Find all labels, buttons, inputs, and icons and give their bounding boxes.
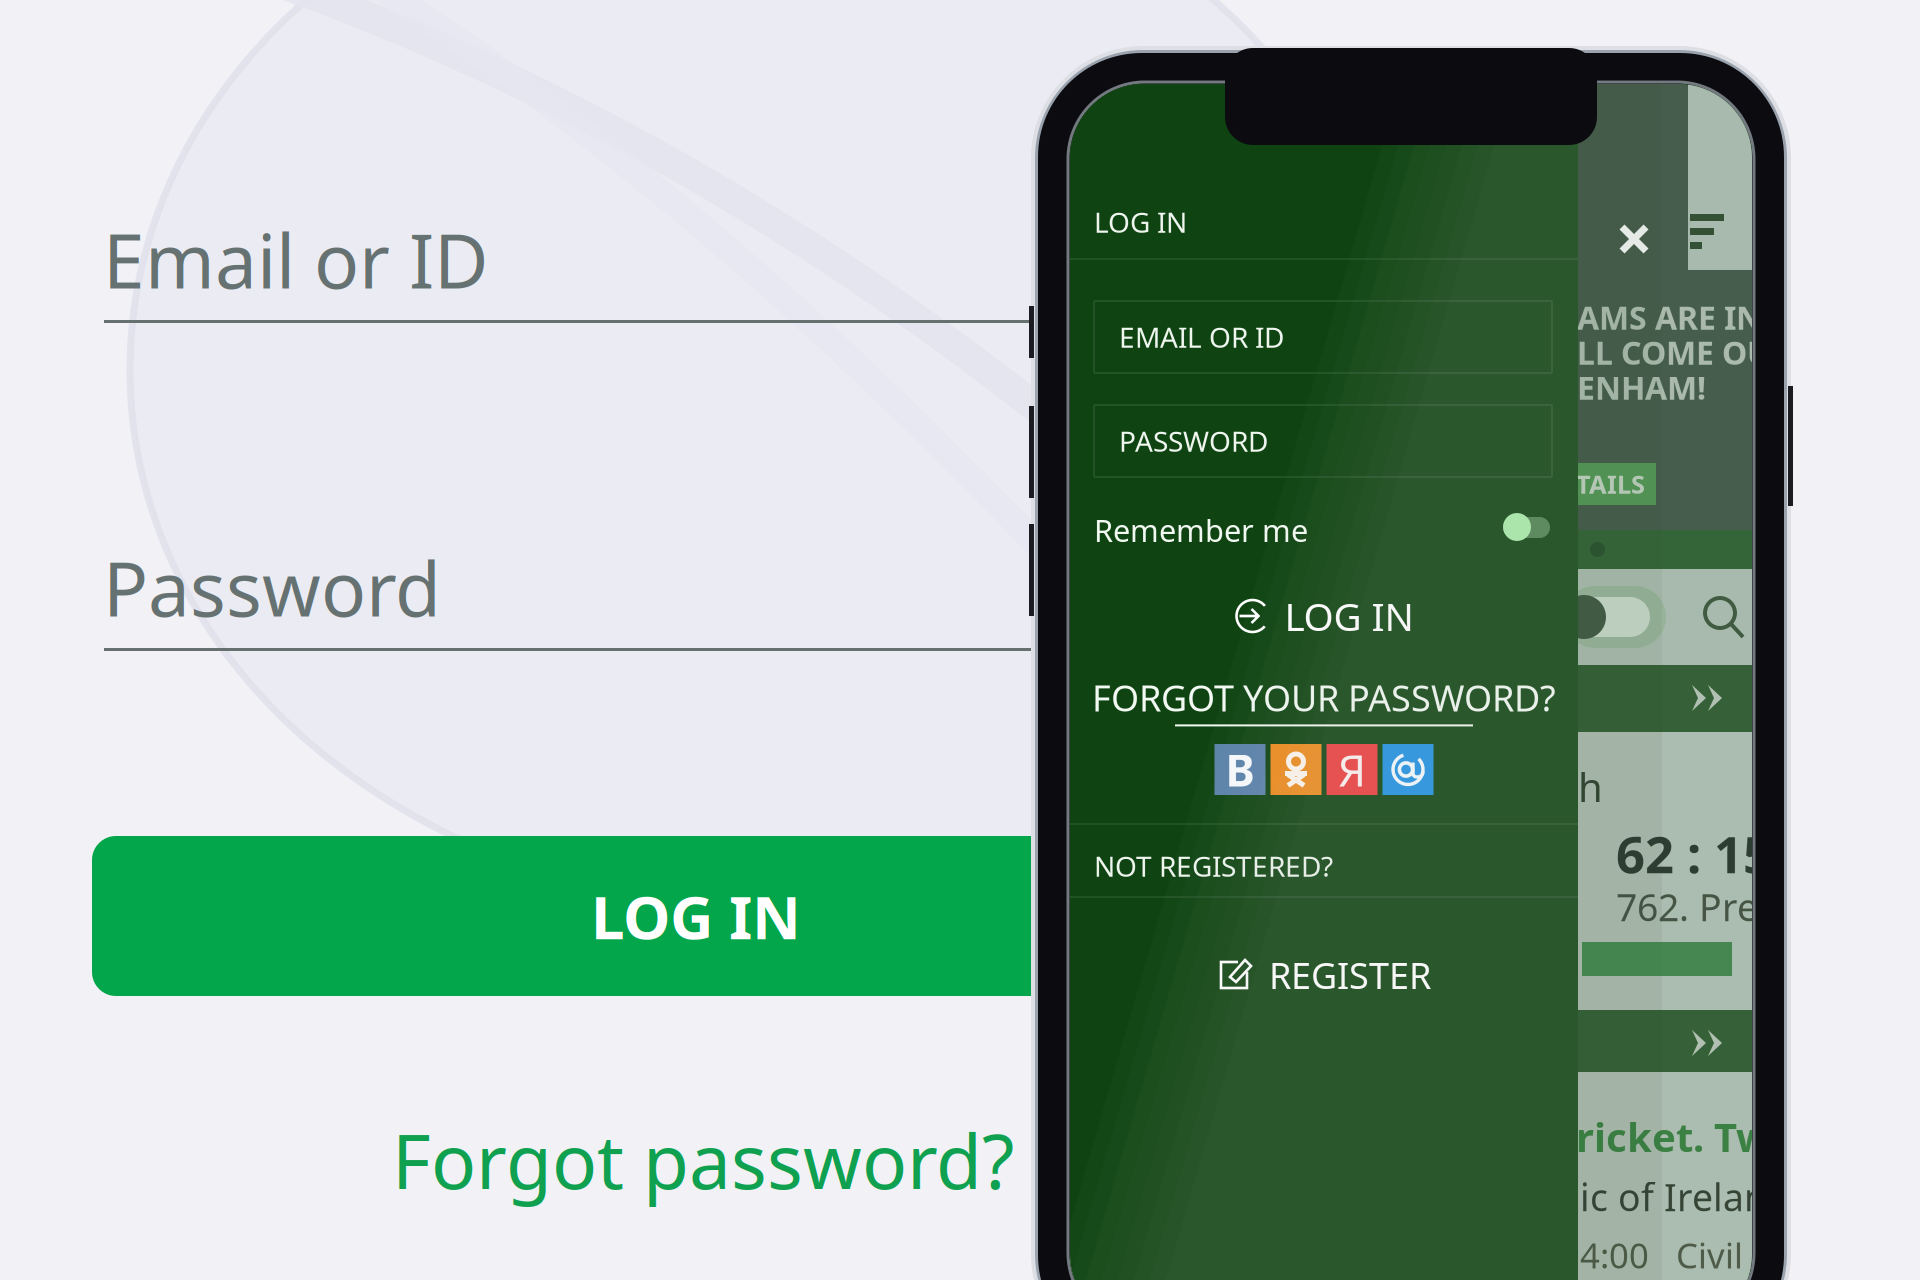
button[interactable]: Remember me (1070, 497, 1578, 563)
button[interactable]: PASSWORD (1094, 405, 1552, 477)
button[interactable]: EMAIL OR ID (1094, 301, 1552, 373)
staticText: Forgot password? (392, 1110, 1014, 1210)
staticText: FORGOT YOUR PASSWORD? (1092, 674, 1556, 721)
button[interactable]: TAILS (1570, 463, 1656, 505)
staticText: PASSWORD (1119, 422, 1268, 460)
staticText: 4:00 Civil Service (1580, 1232, 1869, 1278)
staticText: 62 : 155 (1616, 820, 1801, 887)
staticText: TAILS (1576, 467, 1645, 501)
staticText: REGISTER (1269, 951, 1431, 999)
button[interactable]: REGISTER (1070, 945, 1578, 1005)
staticText: AMS ARE IN G (1577, 296, 1793, 338)
button[interactable]: LOG IN (92, 836, 1092, 996)
button[interactable]: Close (1605, 210, 1663, 268)
staticText: EMAIL OR ID (1119, 318, 1284, 356)
staticText: lic of Ireland - (1570, 1172, 1822, 1222)
button[interactable]: Sign in with Mail.ru (1382, 744, 1433, 795)
staticText: Я (1338, 740, 1366, 799)
button[interactable]: Sign in with Yandex (1326, 744, 1377, 795)
staticText: Email or ID (103, 210, 489, 309)
staticText: h (1578, 760, 1603, 813)
staticText: LOG IN (1094, 203, 1187, 241)
staticText: LOG IN (591, 876, 801, 956)
staticText: B (1225, 740, 1254, 799)
staticText: LL COME OUT (1577, 331, 1789, 373)
staticText: 762. Pressu (1616, 882, 1817, 932)
staticText: LOG IN (1284, 590, 1413, 642)
staticText: Password (103, 538, 441, 637)
button[interactable]: LOG IN (1070, 586, 1578, 646)
button[interactable]: Sign in with VK (1214, 744, 1265, 795)
button[interactable]: Sign in with Odnoklassniki (1270, 744, 1321, 795)
button[interactable]: Forgot password? (392, 1110, 1014, 1210)
staticText: ricket. Twenty (1576, 1110, 1860, 1163)
staticText: ENHAM! (1577, 366, 1706, 408)
button[interactable]: FORGOT YOUR PASSWORD? (1070, 676, 1578, 724)
staticText: Remember me (1094, 510, 1308, 550)
staticText: NOT REGISTERED? (1094, 847, 1333, 885)
button[interactable]: Filters (1688, 82, 1752, 270)
